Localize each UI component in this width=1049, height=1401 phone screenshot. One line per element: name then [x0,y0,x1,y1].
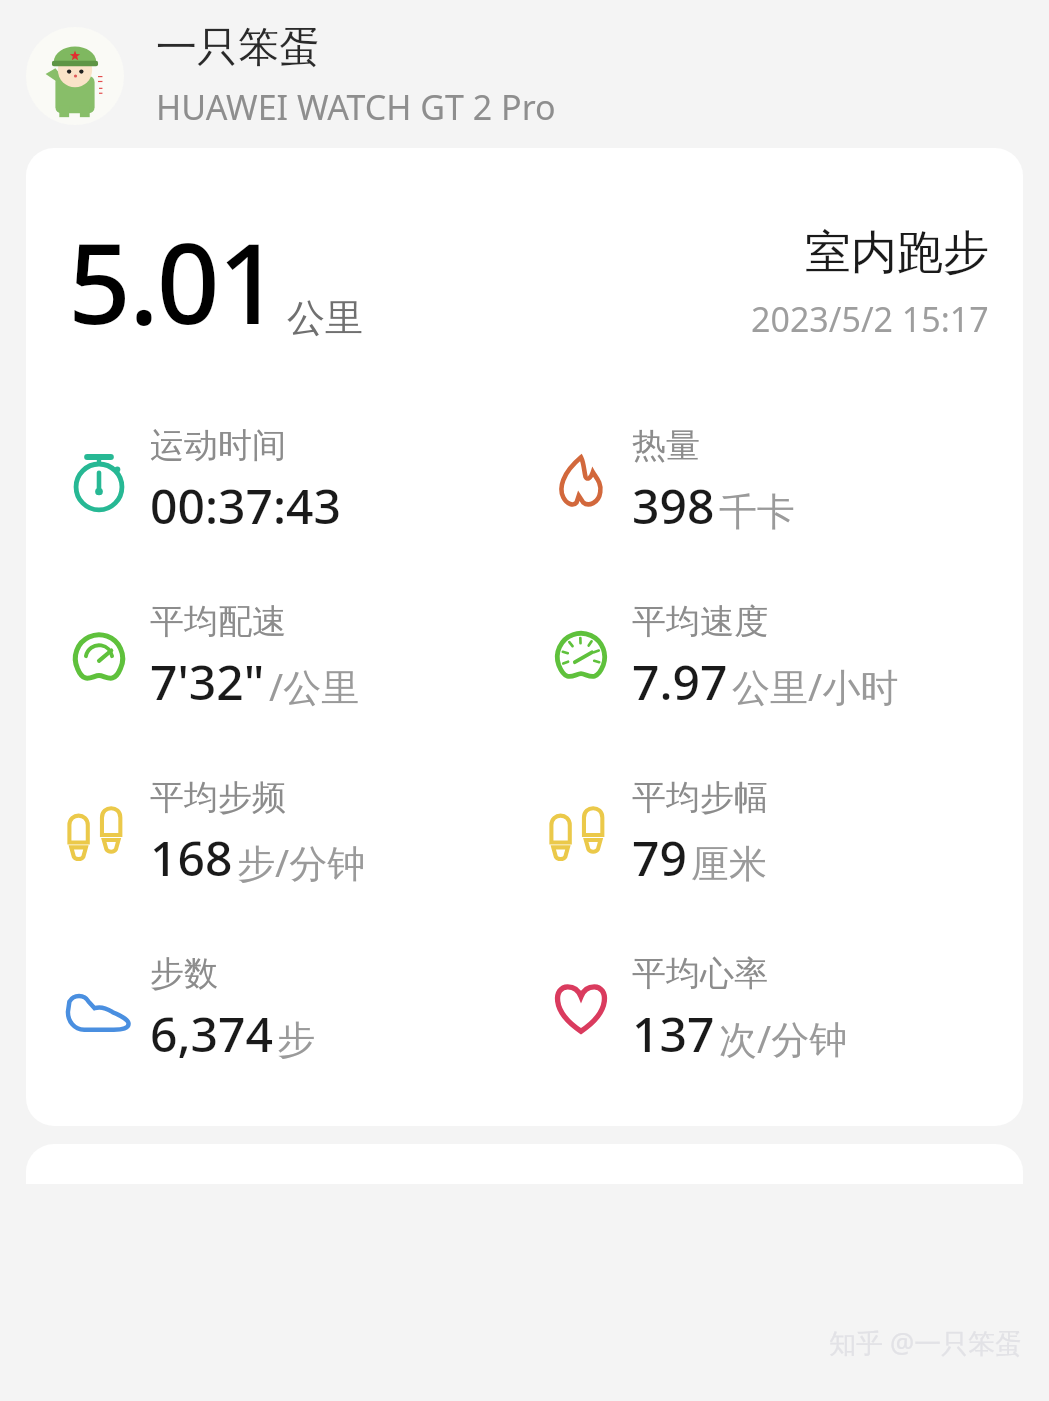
staticText: 168 [150,825,233,890]
staticText: 7.97 [632,649,728,714]
staticText: 137 [632,1001,715,1066]
staticText: 平均速度 [632,600,768,643]
staticText: 79 [632,825,687,890]
staticText: 热量 [632,424,700,467]
other: 平均步频 [62,796,136,870]
staticText: 一只笨蛋 [156,22,320,74]
staticText: 次/分钟 [719,1012,848,1064]
staticText: 步/分钟 [237,836,366,888]
button[interactable]: 平均速度 [544,600,1023,714]
staticText: 7'32" [150,649,265,714]
staticText: 2023/5/2 15:17 [751,296,989,342]
staticText: 运动时间 [150,424,286,467]
button[interactable]: 平均步幅 [544,776,1023,890]
other: 平均步幅 [544,796,618,870]
other: 运动时间 [62,444,136,518]
staticText: 步数 [150,952,218,995]
other: 平均心率 [544,972,618,1046]
staticText: 平均步幅 [632,776,768,819]
staticText: /公里 [269,660,360,712]
staticText: 00:37:43 [150,473,341,538]
staticText: 室内跑步 [805,224,989,282]
button[interactable]: 平均心率 [544,952,1023,1066]
staticText: 千卡 [719,488,795,536]
staticText: 平均配速 [150,600,286,643]
button[interactable]: 热量 [544,424,1023,538]
button[interactable]: 步数 [62,952,524,1066]
staticText: 5.01 [68,206,279,356]
staticText: 公里/小时 [732,660,899,712]
other: 平均配速 [62,620,136,694]
staticText: 398 [632,473,715,538]
other: 平均速度 [544,620,618,694]
staticText: 公里 [287,294,363,342]
staticText: 厘米 [691,840,767,888]
staticText: 平均步频 [150,776,286,819]
button[interactable]: 平均配速 [62,600,524,714]
other: 步数 [62,972,136,1046]
staticText: 6,374 [150,1001,273,1066]
button[interactable]: 平均步频 [62,776,524,890]
button[interactable]: 运动时间 [62,424,524,538]
staticText: 平均心率 [632,952,768,995]
staticText: HUAWEI WATCH GT 2 Pro [156,84,556,130]
button[interactable]: 一只笨蛋 [26,22,1023,130]
staticText: 知乎 @一只笨蛋 [829,1324,1023,1361]
other: 热量 [544,444,618,518]
staticText: 步 [277,1016,315,1064]
button[interactable]: 5.01 [26,148,1023,1126]
